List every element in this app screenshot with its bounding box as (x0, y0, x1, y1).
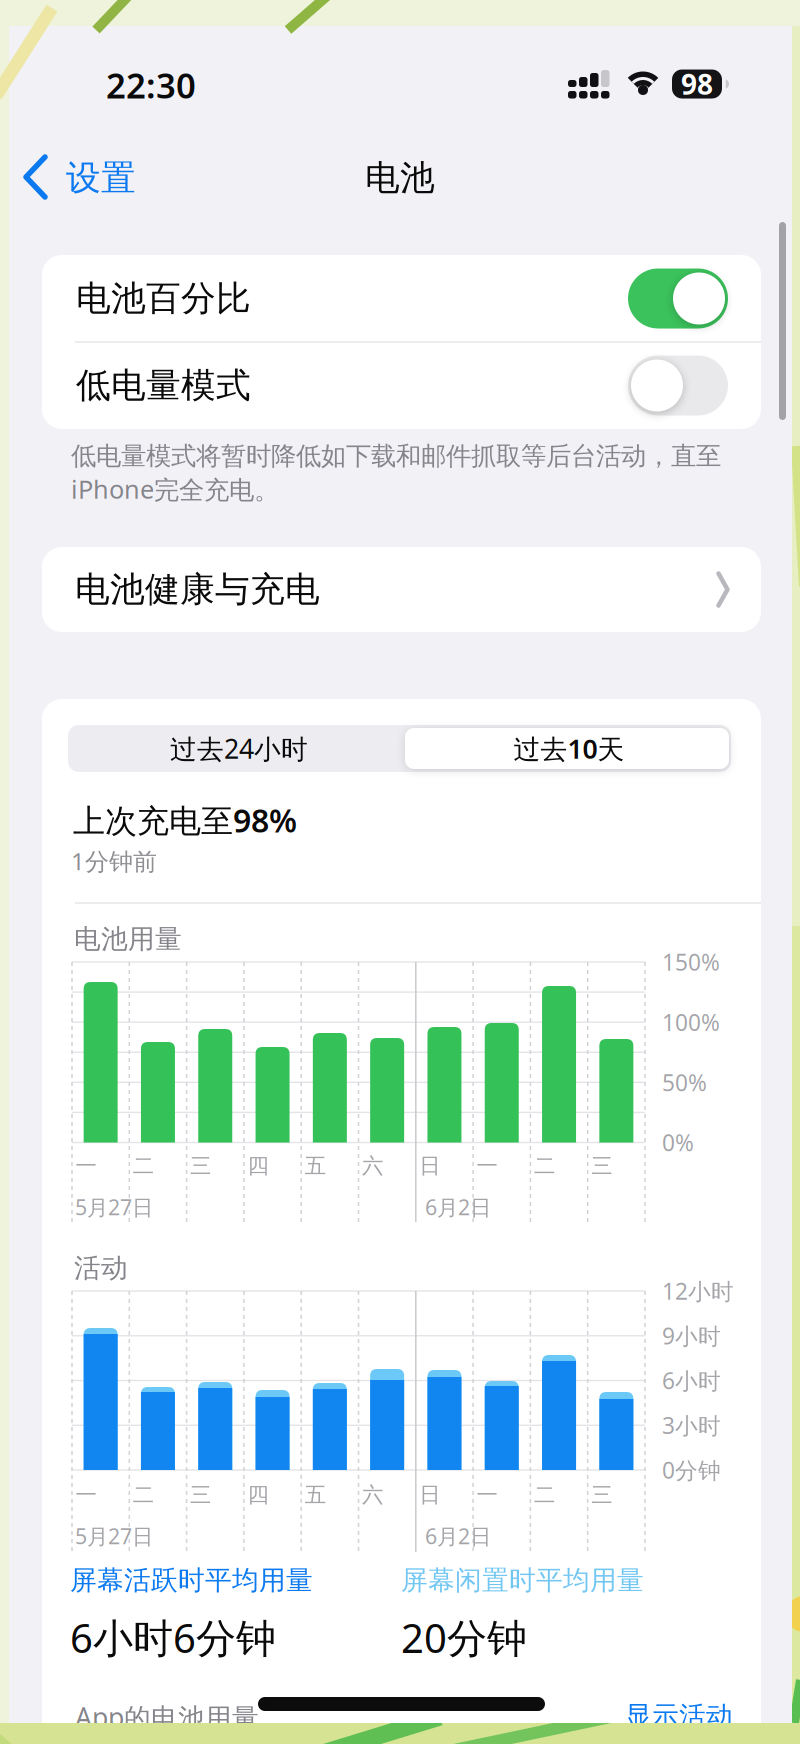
staticText: 日 (419, 1153, 440, 1179)
staticText: 100% (662, 1007, 720, 1037)
staticText: 150% (662, 947, 720, 977)
button[interactable]: 返回设置 (22, 153, 140, 201)
staticText: 一 (75, 1482, 96, 1508)
staticText: 6月2日 (425, 1522, 491, 1550)
staticText: 22:30 (106, 62, 196, 108)
button[interactable]: 电池百分比 (42, 255, 761, 342)
staticText: 屏幕闲置时平均用量 (401, 1564, 644, 1597)
button[interactable]: 屏幕活跃时平均用量 (70, 1567, 396, 1661)
staticText: 低电量模式将暂时降低如下载和邮件抓取等后台活动，直至 (71, 440, 721, 471)
staticText: 0分钟 (662, 1455, 721, 1485)
staticText: 显示活动 (625, 1700, 733, 1732)
staticText: 电池 (365, 157, 435, 199)
staticText: 六 (362, 1482, 383, 1508)
staticText: 五 (305, 1153, 326, 1179)
staticText: 活动 (74, 1252, 128, 1284)
staticText: 五 (305, 1482, 326, 1508)
staticText: 二 (133, 1153, 154, 1179)
staticText: 5月27日 (75, 1522, 153, 1550)
button[interactable]: 电池健康与充电 (42, 547, 761, 632)
staticText: 5月27日 (75, 1193, 153, 1221)
staticText: 过去10天 (513, 731, 624, 766)
staticText: 上次充电至98% (73, 799, 297, 841)
button[interactable]: 低电量模式 (42, 342, 761, 429)
button[interactable]: 过去24小时 (68, 725, 731, 772)
staticText: 6月2日 (425, 1193, 491, 1221)
staticText: 三 (591, 1153, 612, 1179)
staticText: 低电量模式 (76, 364, 251, 407)
staticText: 电池健康与充电 (75, 568, 320, 611)
staticText: 98 (681, 65, 713, 103)
staticText: 一 (477, 1482, 498, 1508)
staticText: 三 (190, 1482, 211, 1508)
staticText: App的电池用量 (75, 1699, 259, 1735)
staticText: 6小时6分钟 (70, 1611, 276, 1664)
staticText: 日 (419, 1482, 440, 1508)
staticText: 二 (534, 1153, 555, 1179)
staticText: 12小时 (662, 1276, 734, 1306)
staticText: 20分钟 (401, 1611, 527, 1664)
staticText: 0% (662, 1127, 694, 1157)
staticText: 3小时 (662, 1410, 721, 1440)
staticText: 二 (133, 1482, 154, 1508)
staticText: 6小时 (662, 1365, 721, 1395)
staticText: 电池百分比 (76, 277, 251, 320)
button[interactable]: 屏幕闲置时平均用量 (401, 1567, 727, 1661)
staticText: 50% (662, 1067, 707, 1097)
staticText: 三 (190, 1153, 211, 1179)
staticText: 一 (477, 1153, 498, 1179)
staticText: 四 (247, 1153, 268, 1179)
staticText: 三 (591, 1482, 612, 1508)
staticText: 1分钟前 (71, 845, 157, 877)
staticText: 设置 (66, 157, 136, 199)
staticText: 9小时 (662, 1321, 721, 1351)
staticText: iPhone完全充电。 (71, 472, 279, 506)
staticText: 电池用量 (74, 923, 182, 955)
button[interactable]: 显示活动 (593, 1694, 733, 1738)
staticText: 二 (534, 1482, 555, 1508)
staticText: 四 (247, 1482, 268, 1508)
staticText: 过去24小时 (170, 731, 308, 766)
staticText: 一 (75, 1153, 96, 1179)
staticText: 六 (362, 1153, 383, 1179)
staticText: 屏幕活跃时平均用量 (70, 1564, 313, 1597)
